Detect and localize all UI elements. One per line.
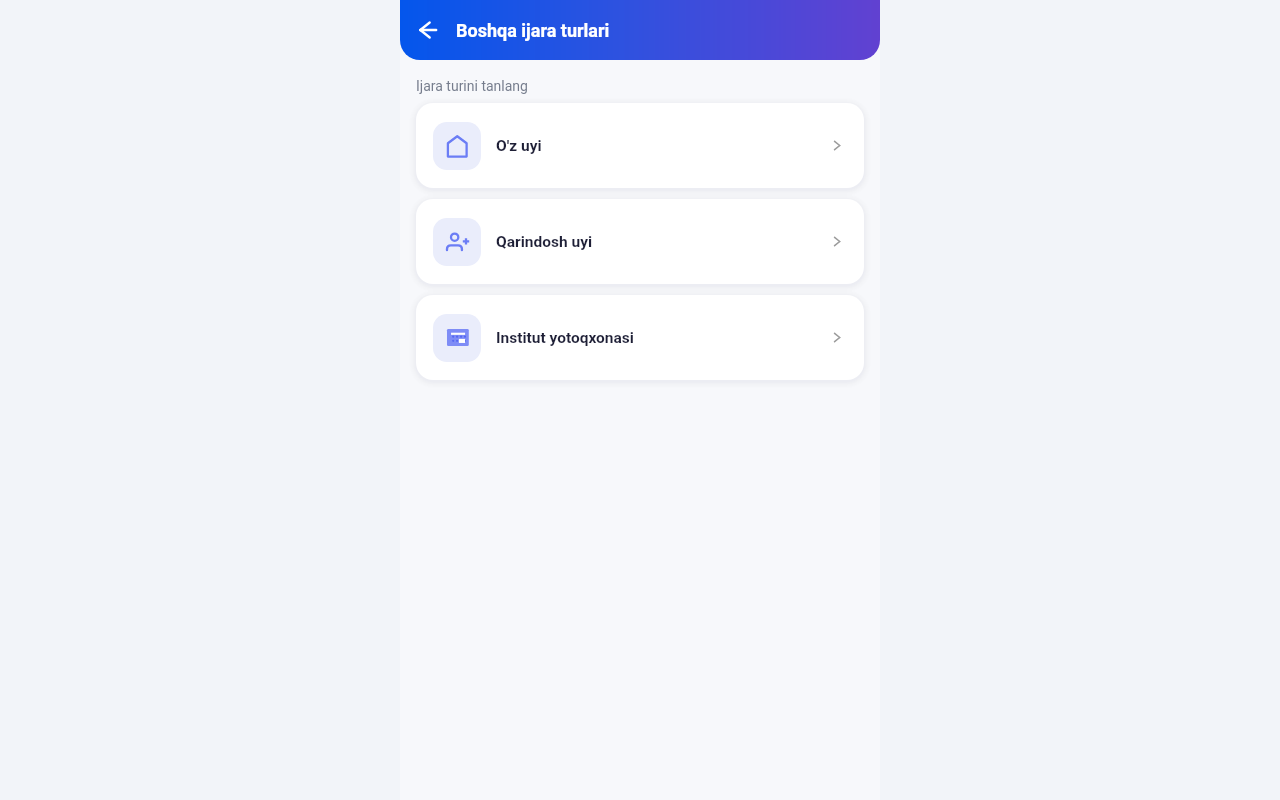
staticText: Boshqa ijara turlari xyxy=(456,20,610,41)
button[interactable]: Back xyxy=(410,12,446,48)
staticText: O'z uyi xyxy=(496,137,542,155)
button[interactable]: Qarindosh uyi xyxy=(416,199,864,284)
button[interactable]: O'z uyi xyxy=(416,103,864,188)
staticText: Qarindosh uyi xyxy=(496,233,593,251)
button[interactable]: Institut yotoqxonasi xyxy=(416,295,864,380)
staticText: Institut yotoqxonasi xyxy=(496,329,634,347)
staticText: Ijara turini tanlang xyxy=(416,78,528,94)
